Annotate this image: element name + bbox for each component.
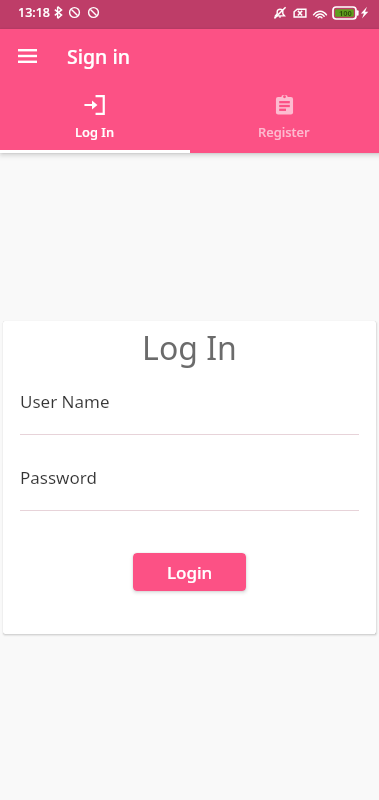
staticText: Login	[167, 561, 213, 584]
staticText: Register	[258, 123, 310, 141]
button[interactable]: Register	[189, 85, 379, 153]
staticText: Log In	[75, 123, 115, 141]
staticText: Password	[20, 466, 97, 489]
staticText: 100	[339, 8, 352, 18]
staticText: User Name	[20, 390, 110, 413]
staticText: Log In	[3, 326, 376, 370]
button[interactable]: Login	[133, 553, 246, 591]
staticText: 13:18	[18, 4, 51, 21]
button[interactable]: Password	[20, 466, 359, 511]
button[interactable]: Open navigation menu	[0, 29, 54, 83]
button[interactable]: User Name	[20, 390, 359, 435]
staticText: Sign in	[67, 43, 130, 70]
button[interactable]: Log In	[0, 85, 189, 153]
